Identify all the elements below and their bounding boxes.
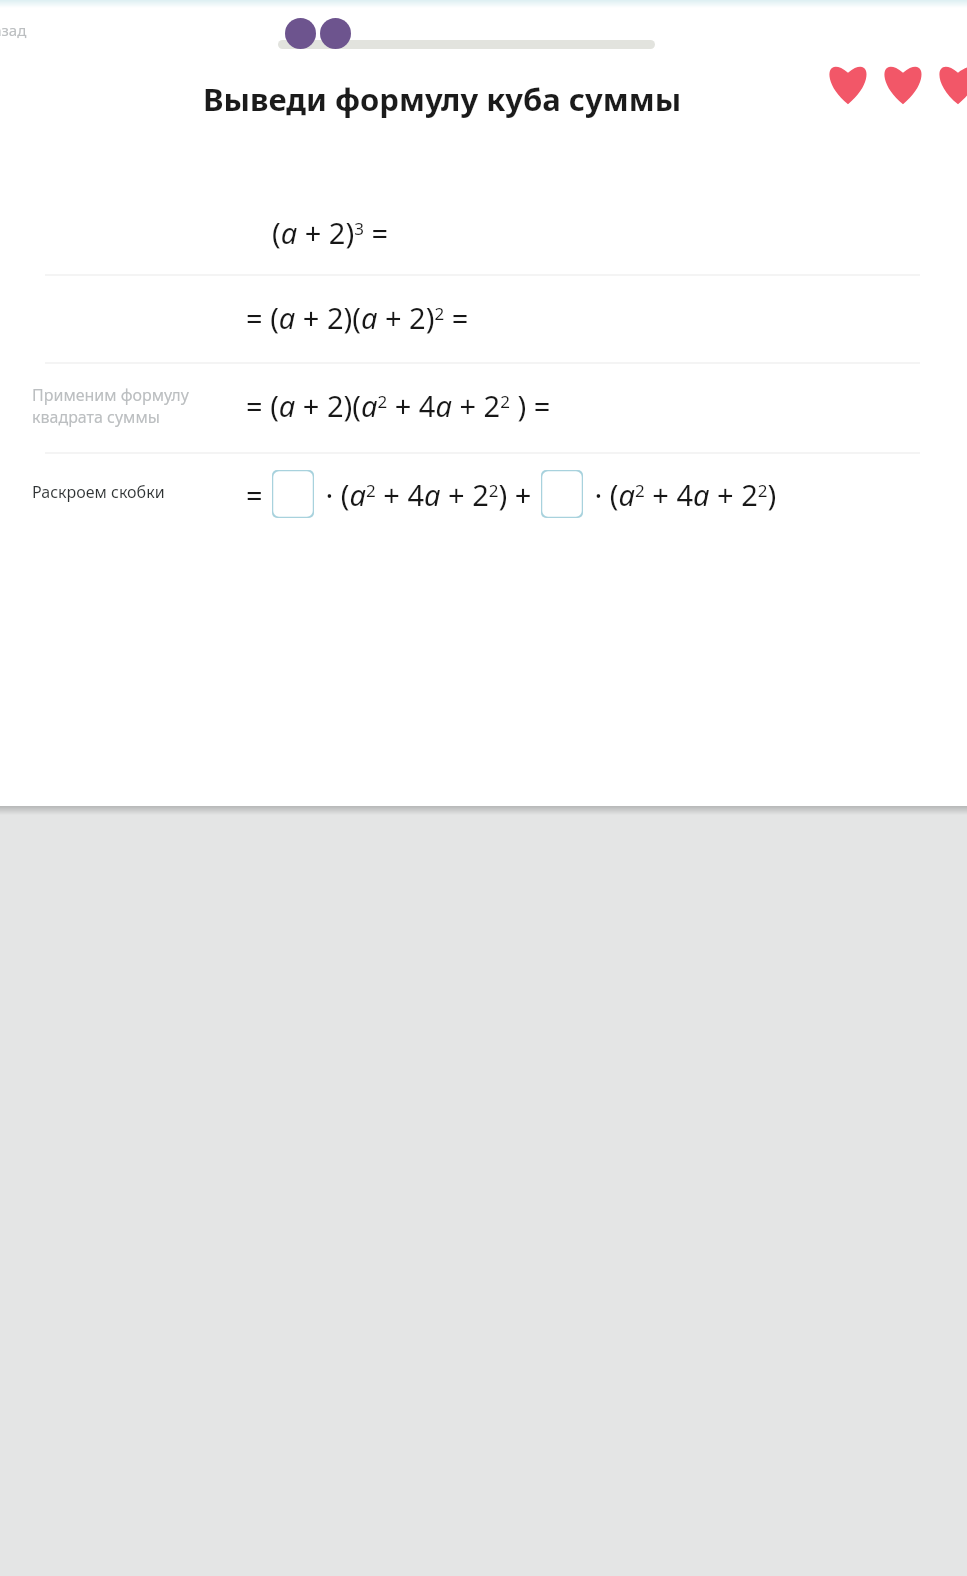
staticText: · (a2 + 4a + 22) xyxy=(587,475,777,514)
staticText: (a + 2)3 = xyxy=(272,213,388,252)
staticText: = (a + 2)(a2 + 4a + 22 ) = xyxy=(246,386,551,425)
button[interactable]: Answer field xyxy=(272,470,314,518)
other: Lives remaining xyxy=(800,55,967,111)
staticText: Назад xyxy=(0,20,27,40)
staticText: = xyxy=(246,475,263,514)
button[interactable]: Назад xyxy=(0,16,35,44)
staticText: = (a + 2)(a + 2)2 = xyxy=(246,298,469,337)
staticText: · (a2 + 4a + 22) + xyxy=(318,475,532,514)
staticText: Раскроем скобки xyxy=(32,481,165,503)
button[interactable]: Answer field xyxy=(541,470,583,518)
staticText: Выведи формулу куба суммы xyxy=(203,78,682,120)
staticText: Применим формулу квадрата суммы xyxy=(32,384,189,428)
